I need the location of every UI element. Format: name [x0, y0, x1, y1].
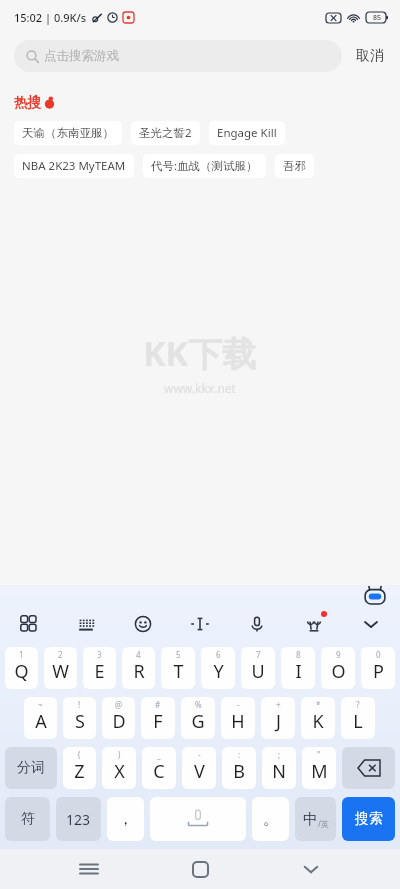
button[interactable]: 中	[295, 797, 336, 841]
staticText: Z	[74, 759, 85, 784]
button[interactable]: !	[63, 697, 96, 739]
staticText: 123	[66, 810, 91, 829]
button[interactable]: Stickers	[301, 611, 327, 637]
staticText: !	[78, 699, 81, 710]
staticText: 2	[58, 649, 63, 660]
staticText: P	[373, 659, 384, 684]
staticText: 9	[336, 649, 341, 660]
staticText: X	[114, 759, 125, 784]
button[interactable]: *	[301, 697, 335, 739]
button[interactable]: +	[261, 697, 295, 739]
button[interactable]: 符	[5, 797, 50, 841]
button[interactable]: 5	[161, 647, 195, 689]
staticText: D	[112, 709, 126, 734]
button[interactable]: Keyboard layout	[73, 611, 99, 637]
button[interactable]: %	[181, 697, 215, 739]
button[interactable]: ;	[262, 747, 296, 789]
staticText: Engage Kill	[217, 125, 277, 141]
staticText: A	[35, 709, 47, 734]
staticText: "	[317, 749, 321, 760]
staticText: M	[311, 759, 328, 784]
button[interactable]: 2	[44, 647, 77, 689]
button[interactable]: NBA 2K23 MyTEAM	[14, 154, 134, 178]
staticText: (	[78, 749, 81, 760]
staticText: @	[115, 699, 123, 710]
staticText: 分词	[17, 759, 45, 777]
staticText: ?	[356, 699, 360, 710]
staticText: )	[118, 749, 121, 760]
button[interactable]: 4	[122, 647, 155, 689]
staticText: KK下载	[143, 330, 257, 376]
button[interactable]: #	[141, 697, 175, 739]
button[interactable]: -	[182, 747, 216, 789]
button[interactable]: 天谕（东南亚服）	[14, 121, 122, 145]
button[interactable]: 0	[361, 647, 395, 689]
button[interactable]: )	[102, 747, 136, 789]
button[interactable]: 8	[281, 647, 315, 689]
staticText: ;	[278, 749, 281, 760]
button[interactable]: 吾邪	[275, 154, 314, 178]
staticText: 15:02 | 0.9K/s	[14, 10, 87, 25]
staticText: /英	[318, 818, 329, 829]
button[interactable]: Emoji	[130, 611, 156, 637]
staticText: 。	[263, 810, 278, 829]
button[interactable]: Collapse keyboard	[358, 611, 384, 637]
button[interactable]: 点击搜索游戏	[14, 40, 342, 72]
button[interactable]: Voice input	[244, 611, 270, 637]
button[interactable]: 123	[56, 797, 101, 841]
staticText: 符	[21, 810, 35, 828]
staticText: 5	[176, 649, 181, 660]
staticText: 0	[376, 649, 381, 660]
button[interactable]: 7	[241, 647, 275, 689]
button[interactable]: Space	[150, 797, 246, 841]
button[interactable]: ，	[107, 797, 144, 841]
button[interactable]: -	[221, 697, 255, 739]
staticText: www.kkx.net	[164, 380, 236, 396]
staticText: 6	[216, 649, 221, 660]
staticText: _	[157, 749, 161, 760]
button[interactable]: _	[142, 747, 176, 789]
button[interactable]: 分词	[5, 747, 57, 789]
staticText: Y	[213, 659, 224, 684]
staticText: *	[316, 699, 321, 710]
button[interactable]: 搜索	[342, 797, 395, 841]
button[interactable]: Home	[178, 849, 222, 889]
button[interactable]: :	[222, 747, 256, 789]
button[interactable]: (	[63, 747, 96, 789]
staticText: 点击搜索游戏	[44, 48, 119, 64]
button[interactable]: Apps	[16, 611, 42, 637]
button[interactable]: 取消	[342, 47, 386, 65]
button[interactable]: Edit text	[187, 611, 213, 637]
staticText: -	[237, 699, 240, 710]
staticText: 8	[296, 649, 301, 660]
button[interactable]: 3	[83, 647, 116, 689]
button[interactable]: Backspace	[342, 747, 395, 789]
staticText: -	[198, 749, 201, 760]
button[interactable]: "	[302, 747, 336, 789]
button[interactable]: 9	[321, 647, 355, 689]
staticText: N	[272, 759, 286, 784]
staticText: 天谕（东南亚服）	[22, 126, 114, 140]
staticText: 1	[19, 649, 24, 660]
button[interactable]: 。	[252, 797, 289, 841]
button[interactable]: Back	[289, 849, 333, 889]
button[interactable]: Engage Kill	[209, 121, 285, 145]
staticText: 圣光之誓2	[139, 125, 192, 141]
button[interactable]: Recent apps	[67, 849, 111, 889]
staticText: E	[94, 659, 105, 684]
staticText: 85	[373, 13, 382, 23]
button[interactable]: ~	[24, 697, 57, 739]
staticText: %	[195, 699, 202, 710]
button[interactable]: ?	[341, 697, 375, 739]
button[interactable]: @	[102, 697, 135, 739]
staticText: F	[153, 709, 163, 734]
staticText: K	[312, 709, 324, 734]
button[interactable]: 圣光之誓2	[131, 121, 200, 145]
button[interactable]: 代号:血战（测试服）	[143, 154, 266, 178]
staticText: O	[331, 659, 346, 684]
button[interactable]: 1	[5, 647, 38, 689]
staticText: NBA 2K23 MyTEAM	[22, 158, 126, 174]
staticText: 中	[303, 810, 318, 829]
button[interactable]: Assistant	[362, 586, 388, 606]
button[interactable]: 6	[201, 647, 235, 689]
